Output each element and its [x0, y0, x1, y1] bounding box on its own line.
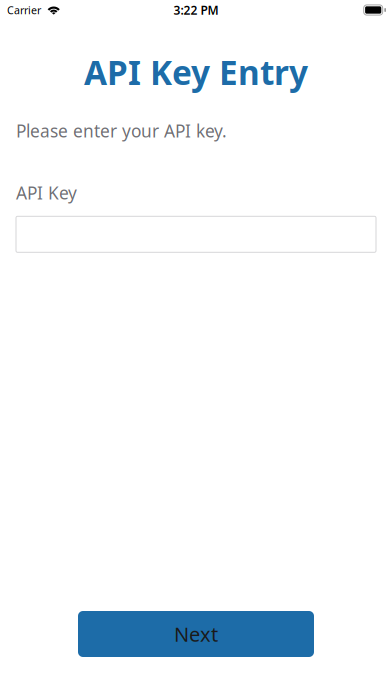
staticText: API Key Entry — [84, 50, 308, 94]
staticText: 3:22 PM — [173, 2, 218, 18]
staticText: Please enter your API key. — [16, 119, 227, 142]
staticText: API Key — [16, 181, 77, 204]
staticText: Carrier — [7, 3, 41, 17]
button[interactable]: API Key text field — [16, 216, 376, 252]
staticText: Next — [174, 621, 218, 647]
button[interactable]: Next — [78, 611, 314, 657]
